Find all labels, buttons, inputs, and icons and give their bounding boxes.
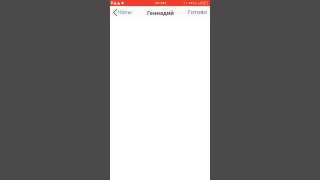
staticText: Геннадий xyxy=(147,9,174,16)
button[interactable]: Back xyxy=(110,6,134,18)
staticText: Чаты xyxy=(118,8,132,16)
other: Back xyxy=(113,9,117,16)
button[interactable]: Готово xyxy=(185,6,210,18)
staticText: Готово xyxy=(188,8,207,16)
